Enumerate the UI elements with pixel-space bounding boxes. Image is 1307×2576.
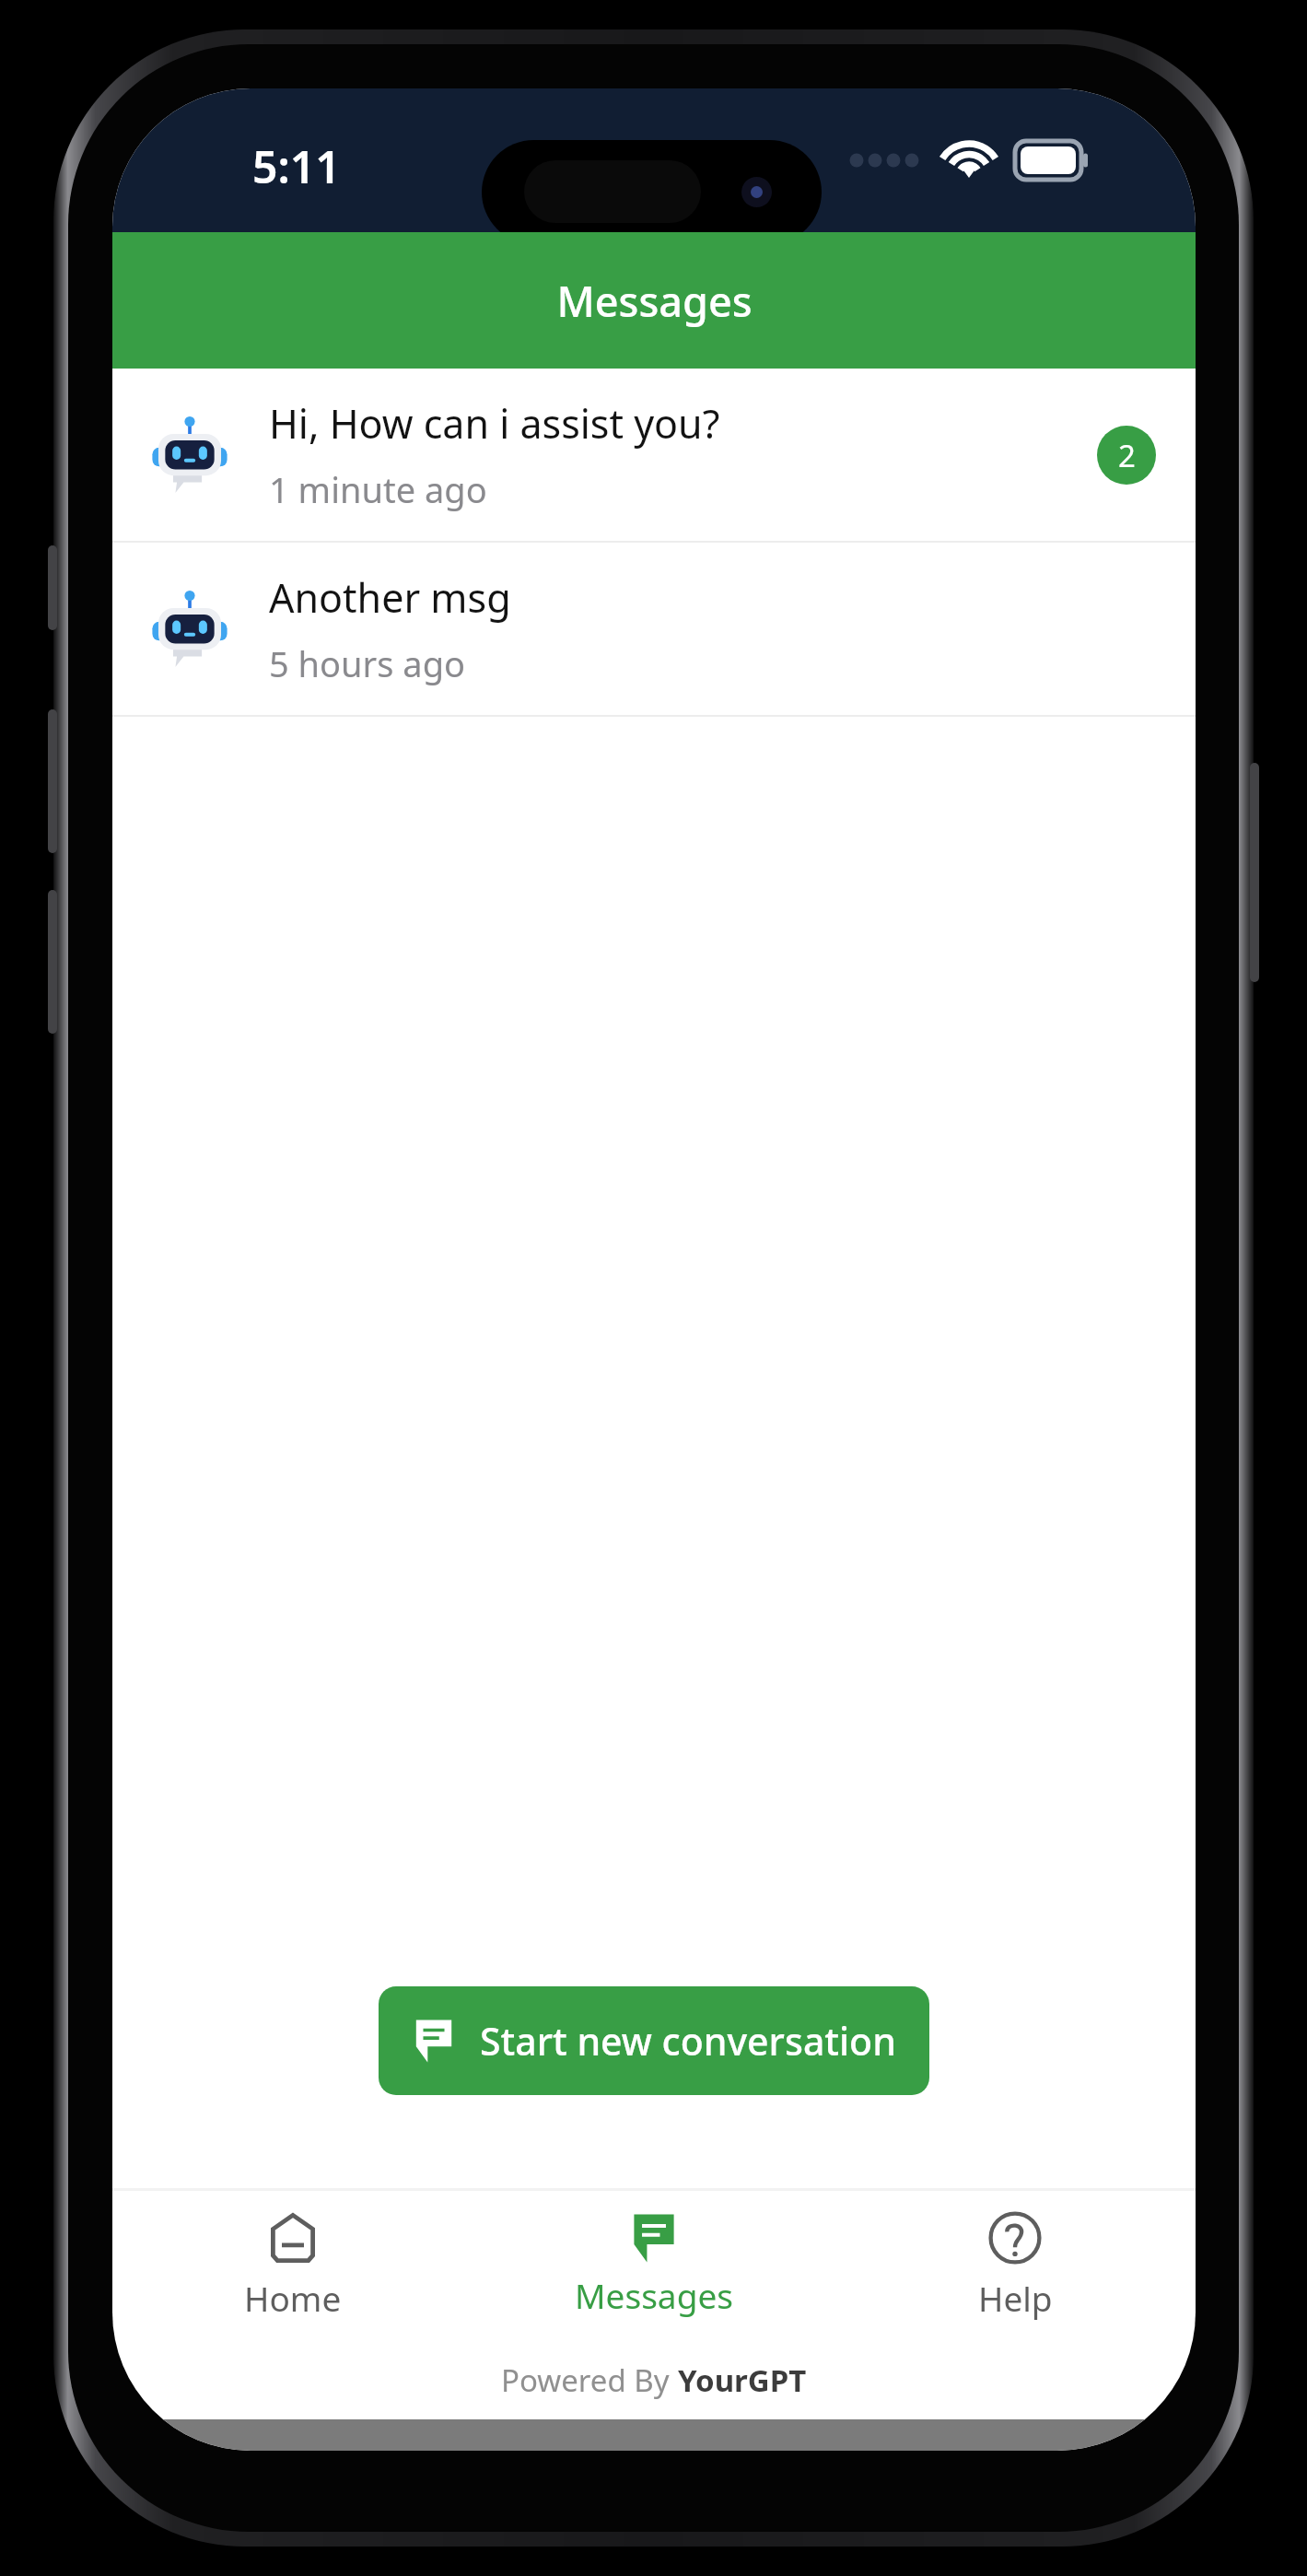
staticText: YourGPT: [678, 2359, 807, 2401]
button[interactable]: Messages: [473, 2191, 834, 2340]
staticText: 1 minute ago: [269, 465, 487, 513]
staticText: Powered By: [501, 2359, 678, 2401]
staticText: 2: [1118, 435, 1136, 476]
staticText: Help: [978, 2275, 1053, 2321]
button[interactable]: Hi, How can i assist you?: [112, 369, 1196, 541]
staticText: Start new conversation: [480, 2015, 896, 2067]
staticText: Home: [244, 2275, 342, 2321]
button[interactable]: Home: [112, 2191, 473, 2340]
button[interactable]: Help: [834, 2191, 1196, 2340]
staticText: Messages: [575, 2272, 733, 2318]
staticText: 5:11: [252, 136, 341, 196]
staticText: Another msg: [269, 570, 511, 625]
staticText: 5 hours ago: [269, 639, 466, 687]
button[interactable]: Another msg: [112, 543, 1196, 715]
staticText: Messages: [556, 273, 753, 329]
button[interactable]: Start new conversation: [379, 1986, 929, 2095]
staticText: Hi, How can i assist you?: [269, 396, 720, 451]
